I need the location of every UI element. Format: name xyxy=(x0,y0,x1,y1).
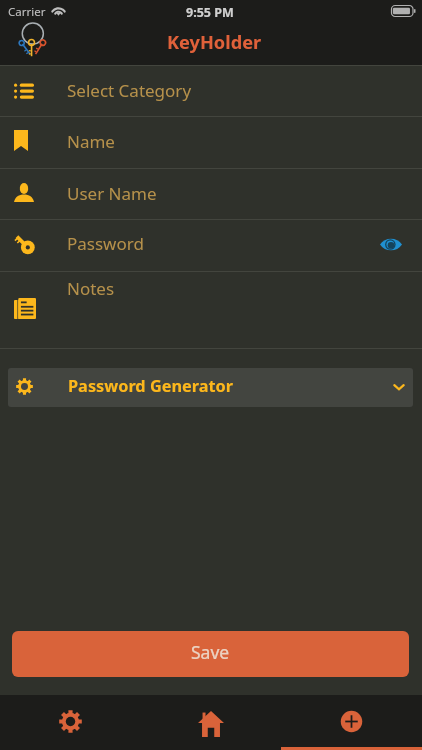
button[interactable]: Add xyxy=(281,695,422,750)
staticText: 9:55 PM xyxy=(186,4,234,21)
button[interactable]: Save xyxy=(12,631,409,677)
button[interactable]: Home xyxy=(140,695,281,750)
button[interactable]: Settings xyxy=(0,695,140,750)
button[interactable]: User Name xyxy=(0,169,422,220)
staticText: Name xyxy=(67,130,115,153)
button[interactable]: Password Generator xyxy=(8,368,413,407)
button[interactable]: Password xyxy=(0,220,422,271)
staticText: Password xyxy=(67,232,144,255)
staticText: Save xyxy=(191,640,230,664)
staticText: Carrier xyxy=(8,4,46,20)
staticText: Notes xyxy=(67,277,115,300)
button[interactable]: Select Category xyxy=(0,66,422,116)
button[interactable]: Notes xyxy=(0,272,422,348)
button[interactable]: Name xyxy=(0,117,422,168)
staticText: User Name xyxy=(67,182,157,205)
staticText: KeyHolder xyxy=(167,30,262,55)
staticText: Password Generator xyxy=(68,375,233,397)
staticText: Select Category xyxy=(67,79,192,102)
